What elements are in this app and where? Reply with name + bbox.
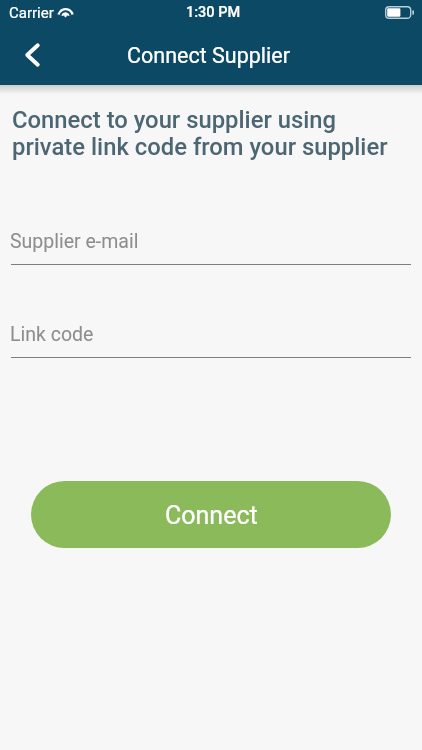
button[interactable]: Supplier e-mail: [0, 218, 422, 270]
button[interactable]: Connect: [31, 481, 391, 548]
staticText: Link code: [10, 323, 94, 346]
button[interactable]: Back: [8, 31, 56, 79]
staticText: 1:30 PM: [186, 4, 241, 21]
staticText: Connect to your supplier using private l…: [12, 106, 388, 161]
staticText: Carrier: [9, 4, 54, 22]
staticText: Supplier e-mail: [10, 230, 139, 253]
staticText: Connect: [165, 501, 258, 530]
button[interactable]: Link code: [0, 311, 422, 363]
staticText: Connect Supplier: [127, 43, 290, 68]
